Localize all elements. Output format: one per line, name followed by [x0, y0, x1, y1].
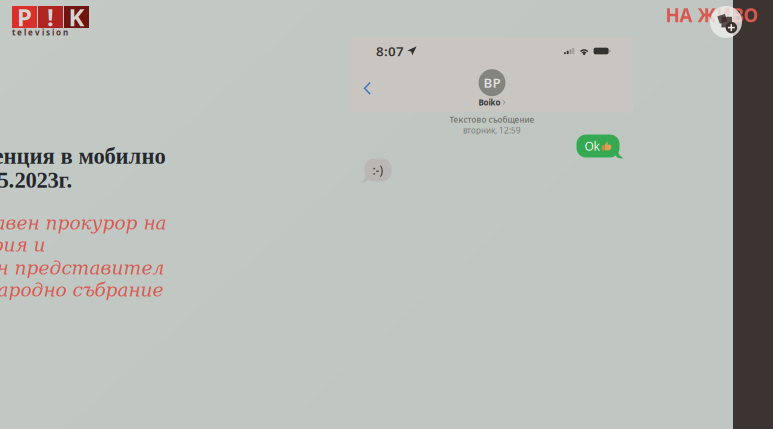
staticText: t e l e v i s i o n [12, 27, 68, 38]
staticText: НА ЖИВО [665, 3, 758, 27]
staticText: приложение, 10.05.2023г. [0, 167, 72, 192]
button[interactable]: Back [351, 72, 383, 105]
staticText: Република България и [0, 234, 45, 256]
staticText: P [17, 1, 32, 33]
staticText: вторник, 12:59 [463, 125, 521, 136]
staticText: Кореспонденция в мобилно [0, 143, 165, 168]
staticText: ! [47, 1, 54, 33]
staticText: :-) [372, 162, 383, 178]
staticText: K [68, 1, 84, 33]
staticText: в 49-ото Народно събрание [0, 279, 163, 301]
staticText: Boiko [478, 97, 500, 108]
staticText: 8:07 [376, 42, 404, 60]
button[interactable]: Add photo [710, 6, 742, 38]
staticText: Текстово съобщение [449, 114, 534, 125]
staticText: Иван Гешев, главен прокурор на [0, 212, 166, 234]
staticText: Ok [584, 138, 599, 154]
staticText: Бойко Борисов, народен представител [0, 257, 164, 279]
staticText: BP [483, 74, 500, 91]
